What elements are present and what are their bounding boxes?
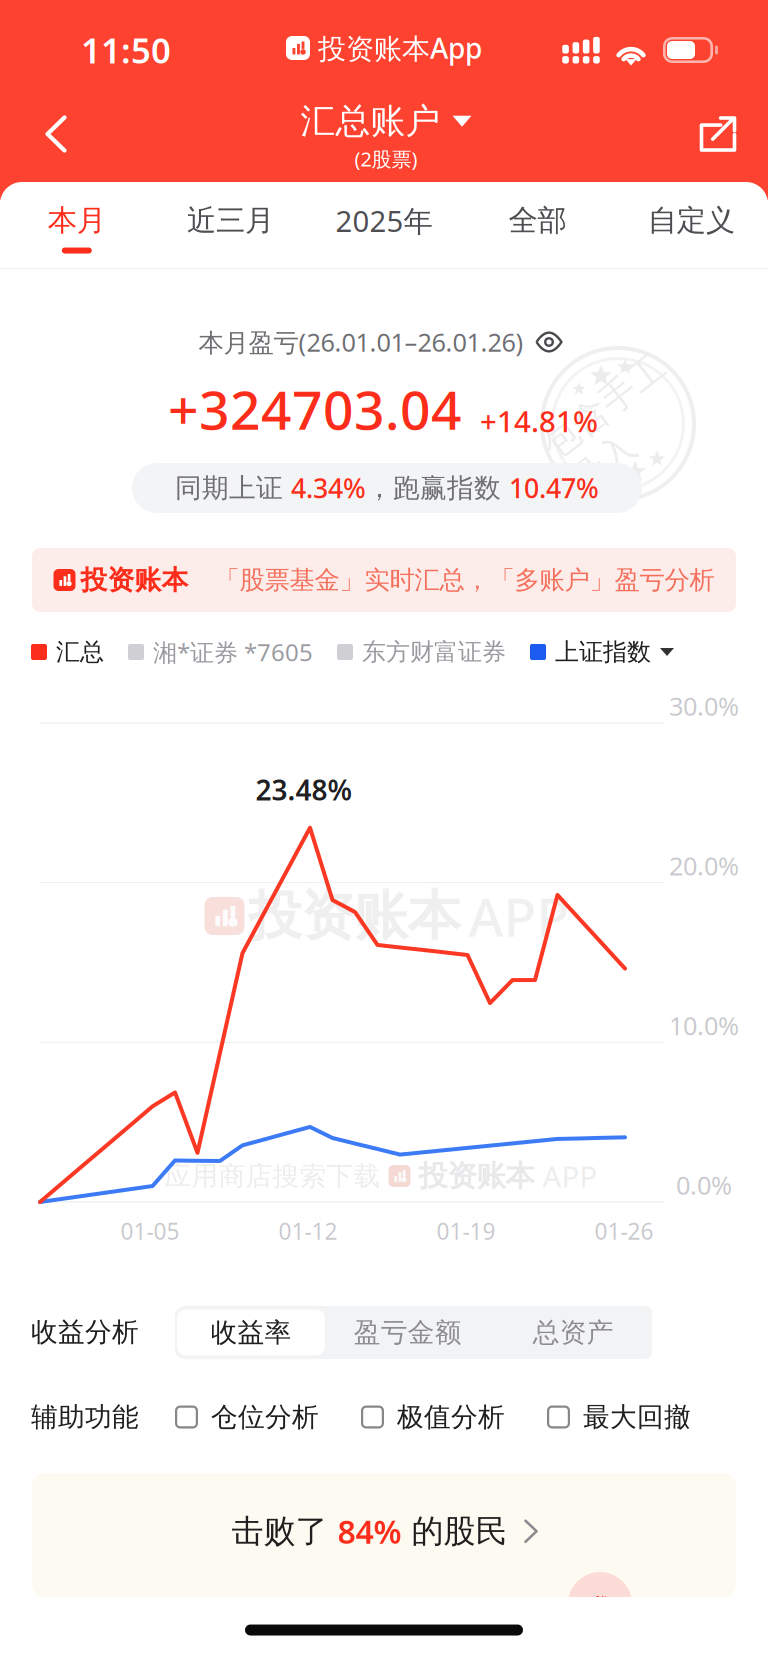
staticText: 包含手工录入 [546,380,690,468]
staticText: 投资账本 [418,1158,534,1194]
staticText: 01-05 [120,1216,179,1246]
staticText: 极值分析 [397,1401,505,1433]
button[interactable]: 投资账本 [32,548,736,612]
button[interactable]: 收益率 [173,1309,325,1355]
staticText: 东方财富证券 [362,637,506,667]
button[interactable]: 汇总 [31,637,104,667]
staticText: 本月 [48,202,106,238]
staticText: 投资账本App [318,29,482,67]
staticText: ，跑赢指数 [366,472,509,504]
button[interactable]: 全部 [461,197,614,259]
staticText: 收益率 [210,1316,291,1349]
staticText: 01-12 [278,1216,337,1246]
button[interactable]: 极值分析 [361,1401,505,1433]
staticText: APP [542,1156,597,1195]
staticText: 84% [337,1510,401,1552]
staticText: 同期上证 [175,472,291,504]
staticText: 「股票基金」实时汇总，「多账户」盈亏分析 [214,564,714,595]
staticText: 10.0% [669,1008,739,1042]
staticText: 汇总账户 [300,100,440,142]
button[interactable]: 我 [32,1473,736,1597]
staticText: 0.0% [676,1168,732,1202]
button[interactable]: 东方财富证券 [337,637,506,667]
staticText: 23.48% [255,771,352,808]
staticText: 2025年 [335,201,432,240]
staticText: 的股民 [401,1512,507,1551]
staticText: 01-19 [436,1216,495,1246]
staticText: 20.0% [669,849,739,882]
staticText: 近三月 [187,202,274,238]
staticText: APP [468,881,569,951]
staticText: (2股票) [354,145,417,172]
staticText: 湘*证券 *7605 [153,636,313,668]
staticText: +324703.04 [168,374,462,444]
staticText: 11:50 [81,27,171,73]
staticText: 收益分析 [31,1316,139,1348]
staticText: 10.47% [509,470,599,506]
staticText: +14.81% [480,401,598,440]
staticText: 自定义 [648,202,735,238]
button[interactable]: 最大回撤 [547,1401,691,1433]
staticText: 仓位分析 [211,1401,319,1433]
button[interactable]: 2025年 [307,197,461,259]
button[interactable]: 上证指数 [530,637,651,667]
staticText: 投资账本 [248,883,460,949]
staticText: 投资账本 [80,564,188,596]
staticText: 辅助功能 [31,1401,139,1433]
button[interactable]: Back [19,97,92,170]
button[interactable]: 本月 [0,197,154,259]
staticText: 上证指数 [555,637,651,667]
button[interactable]: 湘*证券 *7605 [128,636,313,668]
button[interactable]: 仓位分析 [175,1401,319,1433]
staticText: 盈亏金额 [354,1316,462,1349]
staticText: 01-26 [594,1216,653,1246]
button[interactable]: 自定义 [614,197,768,259]
staticText: 全部 [509,202,567,238]
staticText: 4.34% [291,470,366,506]
button[interactable]: Share [675,98,760,170]
staticText: 应用商店搜索下载 [164,1160,380,1192]
button[interactable]: 盈亏金额 [325,1309,490,1355]
staticText: 本月盈亏(26.01.01–26.01.26) [198,325,523,359]
staticText: 最大回撤 [583,1401,691,1433]
staticText: 总资产 [533,1316,614,1349]
staticText: 我 [588,1593,611,1621]
staticText: 30.0% [669,689,739,723]
button[interactable]: 总资产 [490,1309,656,1355]
staticText: 汇总 [56,637,104,667]
button[interactable]: 近三月 [154,197,307,259]
staticText: 击败了 [231,1512,337,1551]
